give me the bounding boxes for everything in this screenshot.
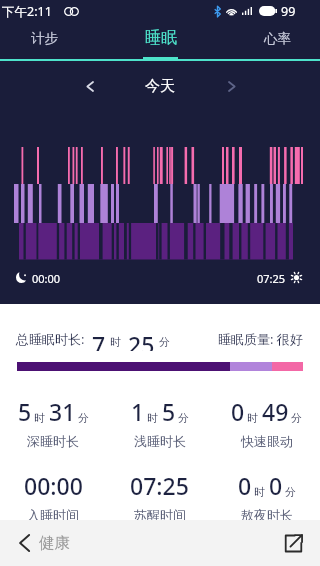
staticText: 总睡眠时长:	[16, 330, 85, 348]
staticText: 时	[110, 335, 121, 349]
button[interactable]: 心率	[264, 22, 291, 54]
staticText: 敖夜时长	[241, 507, 293, 523]
staticText: 分	[159, 335, 170, 349]
staticText: 下午2:11	[2, 3, 52, 20]
staticText: 0	[231, 396, 245, 427]
staticText: 入睡时间	[27, 507, 79, 523]
staticText: 快速眼动	[241, 433, 293, 449]
button[interactable]: 前一天	[74, 64, 106, 108]
staticText: 49	[262, 396, 289, 427]
staticText: 时	[34, 411, 45, 425]
staticText: 睡眠	[145, 28, 177, 48]
button[interactable]: 睡眠	[145, 22, 177, 54]
staticText: 时	[254, 485, 265, 499]
staticText: 苏醒时间	[134, 507, 186, 523]
staticText: 5	[162, 396, 176, 427]
staticText: 31	[49, 396, 76, 427]
staticText: 分	[285, 485, 296, 499]
staticText: 今天	[145, 77, 175, 96]
staticText: 07:25	[130, 470, 189, 501]
staticText: 5	[18, 396, 32, 427]
staticText: 0	[269, 470, 283, 501]
button[interactable]: 健康	[19, 520, 80, 566]
staticText: 分	[291, 411, 302, 425]
staticText: 浅睡时长	[134, 433, 186, 449]
staticText: 睡眠质量: 很好	[218, 330, 303, 348]
staticText: 时	[147, 411, 158, 425]
staticText: 00:00	[32, 271, 61, 283]
staticText: 07:25	[257, 271, 286, 283]
staticText: 00:00	[24, 470, 83, 501]
button[interactable]: 计步	[31, 22, 58, 54]
staticText: 计步	[31, 30, 58, 47]
staticText: 7	[92, 329, 106, 351]
staticText: 心率	[264, 30, 291, 47]
staticText: 时	[247, 411, 258, 425]
staticText: 健康	[39, 533, 70, 553]
staticText: 1	[131, 396, 145, 427]
staticText: 分	[78, 411, 89, 425]
staticText: 分	[178, 411, 189, 425]
staticText: 99	[281, 3, 296, 20]
staticText: 深睡时长	[27, 433, 79, 449]
button[interactable]: 在浏览器中打开	[278, 528, 308, 558]
button[interactable]: 后一天	[215, 64, 247, 108]
staticText: 0	[238, 470, 252, 501]
staticText: 25	[128, 329, 155, 351]
